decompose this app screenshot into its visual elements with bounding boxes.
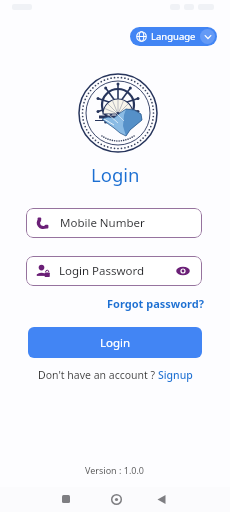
staticText: Mobile Number: [60, 215, 145, 231]
staticText: Login Password: [59, 263, 145, 279]
button[interactable]: Mobile Number: [26, 208, 202, 238]
staticText: Login: [100, 335, 131, 351]
button[interactable]: Login Password: [26, 256, 202, 286]
staticText: Login: [91, 162, 140, 187]
button[interactable]: [108, 491, 124, 507]
button[interactable]: Language: [130, 27, 217, 46]
button[interactable]: Login: [28, 327, 202, 358]
button[interactable]: [153, 491, 169, 507]
staticText: Don't have an account ?: [38, 368, 158, 382]
staticText: Language: [151, 30, 196, 43]
button[interactable]: Forgot password?: [107, 296, 204, 311]
button[interactable]: Signup: [158, 368, 193, 382]
staticText: Version : 1.0.0: [85, 464, 145, 476]
button[interactable]: [58, 491, 74, 507]
